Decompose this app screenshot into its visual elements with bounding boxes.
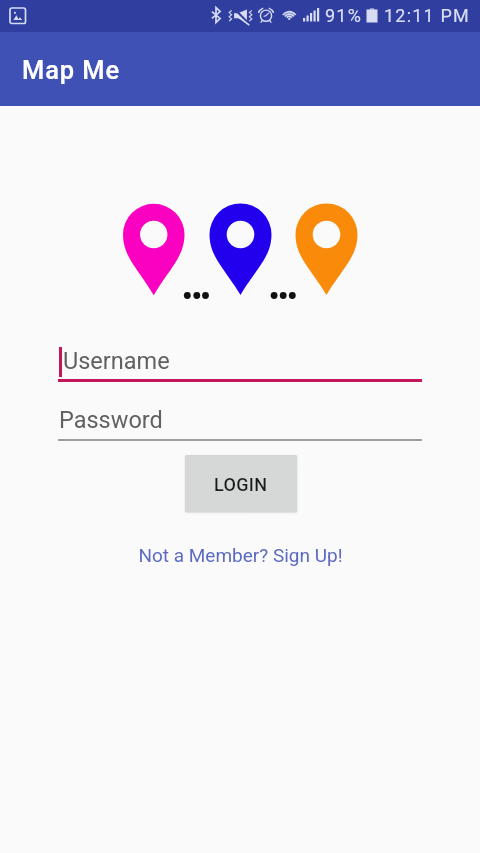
- staticText: 91%: [325, 5, 363, 26]
- button[interactable]: LOGIN: [185, 455, 297, 512]
- staticText: Password: [59, 406, 163, 434]
- button[interactable]: Password: [58, 401, 422, 441]
- staticText: Not a Member? Sign Up!: [138, 544, 343, 566]
- button[interactable]: Username: [58, 342, 422, 382]
- button[interactable]: Not a Member? Sign Up!: [0, 539, 480, 571]
- staticText: Map Me: [22, 55, 121, 85]
- staticText: Username: [63, 347, 170, 375]
- staticText: 12:11 PM: [384, 5, 470, 26]
- staticText: LOGIN: [214, 474, 268, 495]
